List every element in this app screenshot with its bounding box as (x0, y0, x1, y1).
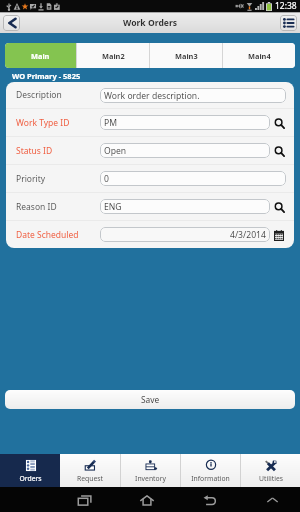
button[interactable]: Open (104, 143, 266, 158)
button[interactable]: Main2 (77, 43, 149, 68)
staticText: Main2 (102, 51, 125, 61)
button[interactable]: Inventory (121, 454, 180, 487)
button[interactable]: PM (104, 115, 266, 130)
button[interactable]: Orders (0, 454, 60, 487)
button[interactable]: ENG (104, 199, 266, 214)
staticText: 0 (104, 173, 109, 185)
staticText: Work Type ID (16, 117, 100, 129)
staticText: Save (141, 394, 160, 405)
staticText: Work Orders (123, 17, 178, 29)
button[interactable]: Request (60, 454, 120, 487)
staticText: Utilities (259, 474, 283, 483)
staticText: Main (31, 51, 50, 61)
staticText: Main3 (175, 51, 198, 61)
button[interactable]: Search Work Type ID (272, 116, 286, 130)
button[interactable]: 0 (104, 171, 282, 186)
staticText: Priority (16, 173, 100, 185)
button[interactable]: Search Status ID (272, 144, 286, 158)
staticText: 4/3/2014 (230, 229, 266, 241)
button[interactable]: Work order description. (104, 88, 282, 103)
button[interactable]: Back (3, 15, 20, 31)
button[interactable]: Search Reason ID (272, 200, 286, 214)
staticText: Description (16, 89, 100, 101)
button[interactable]: Save (5, 390, 295, 409)
staticText: 12:38 (275, 0, 297, 12)
button[interactable]: Recents (74, 489, 96, 511)
button[interactable]: Main3 (150, 43, 222, 68)
staticText: Information (191, 474, 230, 483)
button[interactable]: Information (181, 454, 240, 487)
button[interactable]: 4/3/2014 (104, 227, 266, 242)
staticText: Main4 (248, 51, 271, 61)
button[interactable]: Expand (261, 489, 283, 511)
staticText: ENG (104, 201, 122, 213)
staticText: WO Primary - 5825 (12, 71, 81, 81)
staticText: Request (77, 474, 103, 483)
button[interactable]: Back (199, 489, 221, 511)
staticText: Work order description. (104, 90, 200, 102)
staticText: Open (104, 145, 127, 157)
button[interactable]: Menu (280, 15, 297, 31)
button[interactable]: Utilities (241, 454, 300, 487)
button[interactable]: Home (136, 489, 158, 511)
button[interactable]: Main (5, 43, 76, 68)
button[interactable]: Pick date (272, 228, 286, 242)
staticText: Orders (19, 474, 42, 483)
staticText: Reason ID (16, 201, 100, 213)
staticText: Date Scheduled (16, 229, 100, 241)
staticText: Inventory (135, 474, 166, 483)
staticText: Status ID (16, 145, 100, 157)
button[interactable]: Main4 (223, 43, 295, 68)
staticText: PM (104, 117, 117, 129)
